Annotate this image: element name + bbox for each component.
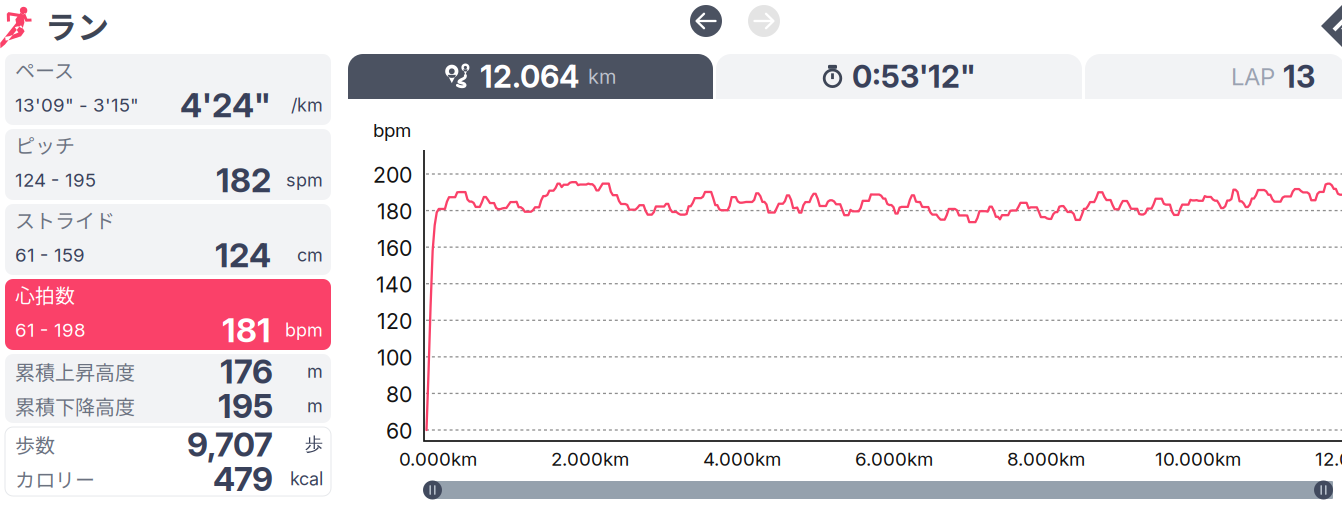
staticText: cm	[297, 244, 323, 266]
staticText: 180	[377, 199, 412, 224]
staticText: 2.000km	[551, 448, 629, 470]
staticText: 61 - 159	[15, 244, 85, 266]
staticText: 80	[386, 381, 412, 407]
staticText: bpm	[285, 319, 323, 341]
staticText: ラン	[45, 2, 109, 48]
staticText: 累積上昇高度	[15, 357, 135, 386]
staticText: ペース	[15, 55, 74, 84]
staticText: 歩	[305, 433, 323, 456]
staticText: ストライド	[15, 205, 115, 234]
staticText: 176	[220, 351, 273, 391]
staticText: bpm	[373, 119, 411, 142]
staticText: 181	[222, 310, 271, 350]
staticText: 10.000km	[1155, 448, 1241, 470]
staticText: /km	[291, 94, 323, 116]
staticText: 4'24"	[180, 85, 271, 125]
staticText: km	[588, 64, 616, 89]
button[interactable]: ピッチ	[5, 129, 331, 200]
staticText: 9,707	[187, 424, 273, 464]
button[interactable]: Previous activity	[690, 5, 722, 37]
button[interactable]: 0:53'12"	[716, 54, 1082, 99]
staticText: 124 - 195	[15, 169, 96, 191]
staticText: 100	[377, 345, 412, 371]
staticText: 479	[213, 459, 273, 499]
button[interactable]: ペース	[5, 54, 331, 125]
staticText: 6.000km	[855, 448, 933, 470]
button[interactable]: 12.064	[348, 54, 713, 99]
staticText: 60	[386, 418, 412, 444]
staticText: 13	[1283, 58, 1315, 95]
staticText: spm	[286, 169, 323, 191]
staticText: 182	[216, 160, 271, 200]
button[interactable]: 歩数	[5, 427, 331, 496]
staticText: LAP	[1231, 62, 1275, 91]
button[interactable]: LAP	[1085, 54, 1342, 99]
staticText: 13'09" - 3'15"	[15, 94, 139, 116]
button[interactable]: Next activity	[748, 5, 780, 37]
staticText: m	[307, 360, 323, 382]
staticText: 124	[215, 235, 271, 275]
staticText: 8.000km	[1007, 448, 1085, 470]
staticText: 4.000km	[703, 448, 781, 470]
staticText: 120	[377, 308, 412, 334]
staticText: 0.000km	[399, 448, 477, 470]
staticText: ピッチ	[15, 130, 75, 159]
staticText: 61 - 198	[15, 319, 86, 341]
staticText: 195	[218, 386, 273, 426]
button[interactable]: ストライド	[5, 204, 331, 275]
staticText: 140	[376, 272, 412, 298]
button[interactable]: 心拍数	[5, 279, 331, 350]
staticText: 0:53'12"	[852, 58, 976, 95]
staticText: 200	[373, 162, 412, 188]
staticText: 歩数	[15, 430, 55, 459]
staticText: 累積下降高度	[15, 391, 135, 420]
staticText: 12.0	[1315, 448, 1342, 470]
staticText: m	[307, 395, 323, 417]
staticText: 心拍数	[15, 280, 75, 309]
staticText: カロリー	[15, 464, 95, 493]
button[interactable]: Tag	[1320, 0, 1342, 51]
staticText: 160	[377, 235, 412, 261]
staticText: kcal	[290, 468, 323, 490]
staticText: 12.064	[480, 58, 579, 95]
button[interactable]: 累積上昇高度	[5, 354, 331, 423]
